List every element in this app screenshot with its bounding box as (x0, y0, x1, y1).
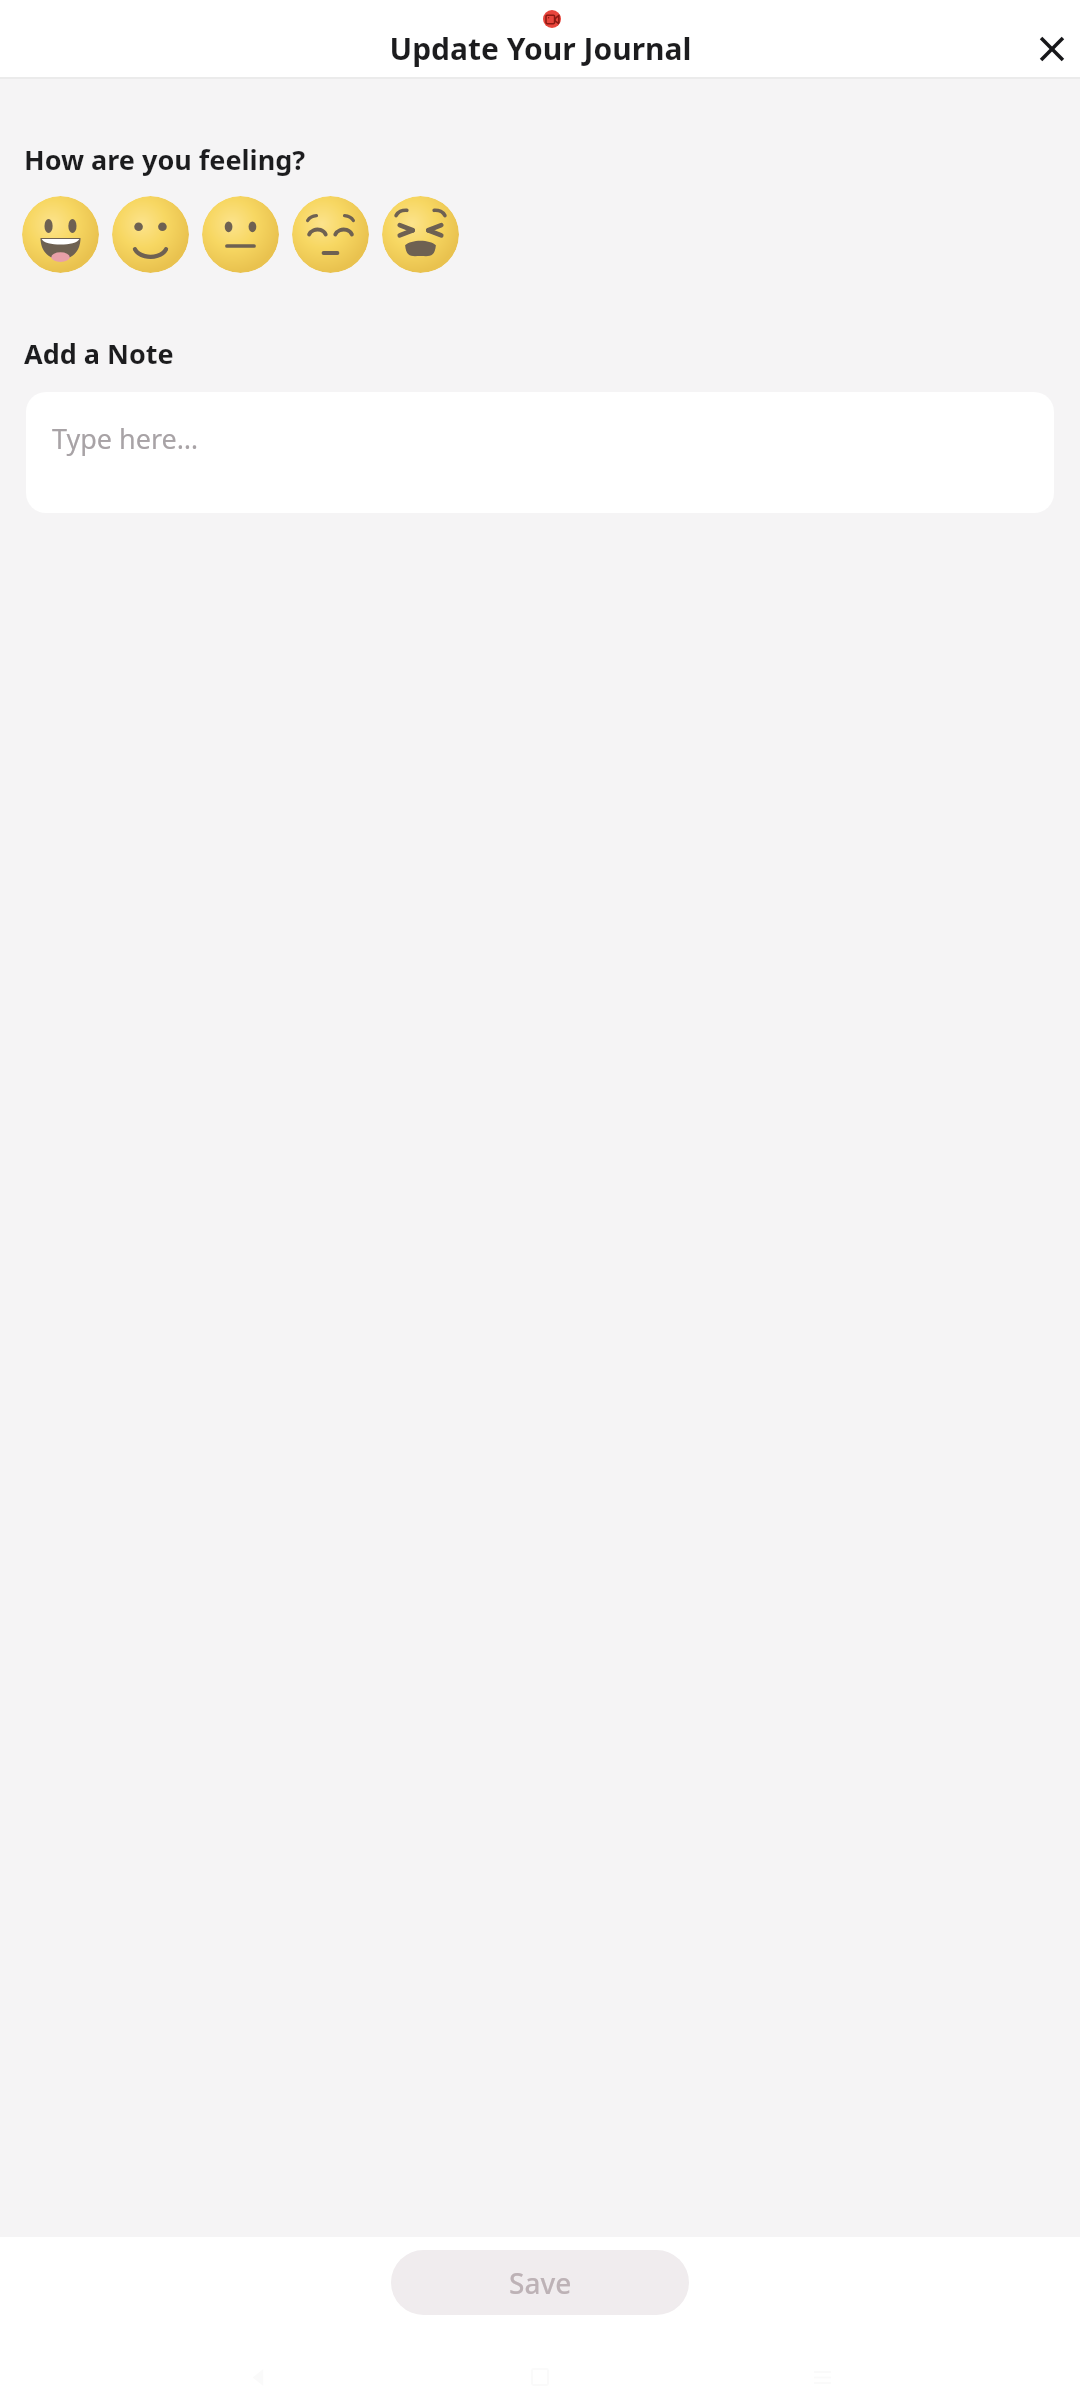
staticText: Save (509, 2264, 572, 2302)
other: Recording (543, 10, 561, 28)
staticText: How are you feeling? (24, 141, 306, 178)
button[interactable]: Close (1024, 21, 1080, 77)
button[interactable]: Very distressed (382, 196, 459, 273)
button[interactable]: Very happy (22, 196, 99, 273)
button[interactable]: Sad (292, 196, 369, 273)
button[interactable]: Happy (112, 196, 189, 273)
staticText: Add a Note (24, 335, 174, 372)
staticText: Type here… (52, 420, 199, 457)
staticText: Update Your Journal (389, 28, 692, 69)
button[interactable]: Neutral (202, 196, 279, 273)
button[interactable]: Type here… (26, 392, 1054, 513)
button[interactable]: Save (391, 2250, 689, 2315)
